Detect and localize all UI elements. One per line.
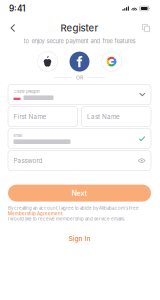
staticText: By creating an account, I agree to abide… bbox=[8, 206, 139, 211]
button[interactable]: Continue with Apple bbox=[37, 52, 57, 72]
staticText: Email bbox=[13, 133, 22, 138]
button[interactable]: Next bbox=[8, 185, 151, 202]
button[interactable]: Sign In bbox=[58, 232, 100, 246]
staticText: Sign In bbox=[68, 235, 90, 243]
staticText: to enjoy secure payment and free feature… bbox=[23, 37, 135, 45]
staticText: OR bbox=[76, 74, 83, 81]
staticText: First Name bbox=[13, 113, 46, 120]
staticText: Last Name bbox=[87, 113, 120, 120]
staticText: I would like to receive membership and s… bbox=[8, 216, 125, 221]
staticText: Membership Agreement. bbox=[8, 211, 63, 216]
button[interactable]: Help bbox=[138, 21, 154, 35]
button[interactable]: Back bbox=[5, 21, 21, 35]
staticText: Next bbox=[71, 189, 87, 197]
staticText: Password bbox=[13, 157, 42, 164]
button[interactable]: Continue with Google bbox=[101, 52, 121, 72]
button[interactable]: Continue with Facebook bbox=[69, 52, 89, 72]
button[interactable]: Show password bbox=[138, 158, 145, 163]
button[interactable]: Country/Region bbox=[8, 85, 151, 105]
staticText: 9:41 bbox=[9, 3, 25, 13]
staticText: Country/Region bbox=[13, 89, 39, 94]
staticText: Register bbox=[60, 22, 98, 34]
